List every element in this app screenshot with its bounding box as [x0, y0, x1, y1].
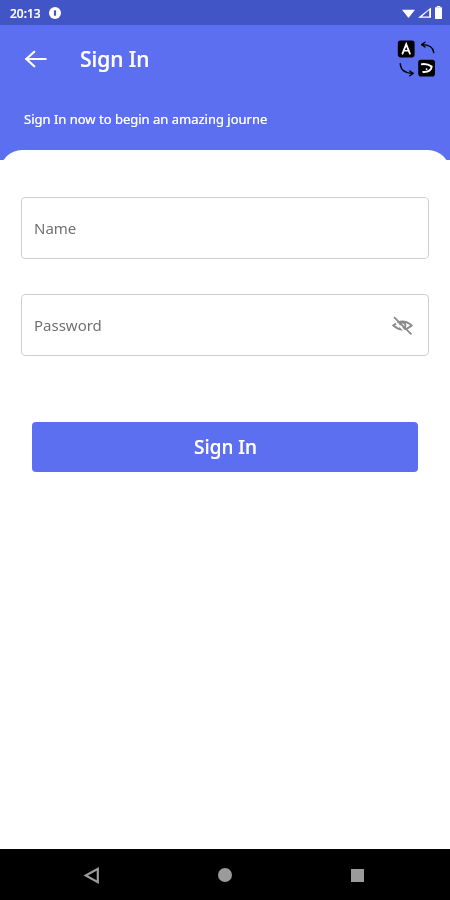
button[interactable]: Recents — [336, 854, 378, 896]
button[interactable]: Change language — [394, 36, 440, 82]
button[interactable]: Home — [204, 854, 246, 896]
staticText: Password — [34, 315, 102, 335]
button[interactable]: Show password — [385, 308, 419, 342]
staticText: Name — [34, 218, 77, 238]
button[interactable]: Password — [21, 294, 429, 356]
button[interactable]: Name — [21, 197, 429, 259]
button[interactable]: Back — [70, 854, 112, 896]
staticText: Sign In — [80, 45, 150, 74]
button[interactable]: Sign In — [32, 422, 418, 472]
staticText: Sign In now to begin an amazing journe — [24, 110, 268, 128]
staticText: Sign In — [194, 434, 257, 460]
staticText: 20:13 — [10, 5, 41, 21]
button[interactable]: Back — [14, 37, 58, 81]
